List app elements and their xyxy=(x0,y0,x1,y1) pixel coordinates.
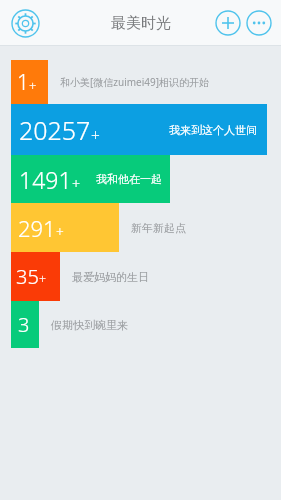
staticText: + xyxy=(39,271,47,288)
staticText: + xyxy=(56,222,64,241)
staticText: 291 xyxy=(18,213,56,243)
staticText: 最爱妈妈的生日 xyxy=(72,270,149,284)
staticText: 和小美[微信zuimei49]相识的开始 xyxy=(60,75,210,89)
staticText: 最美时光 xyxy=(111,14,171,33)
staticText: 假期快到碗里来 xyxy=(51,318,128,332)
staticText: 3 xyxy=(18,311,30,338)
button[interactable]: Settings xyxy=(11,9,40,38)
staticText: 新年新起点 xyxy=(131,221,186,235)
button[interactable]: 20257 xyxy=(0,104,281,155)
button[interactable]: 35 xyxy=(0,252,281,301)
button[interactable]: 291 xyxy=(0,203,281,252)
staticText: 1491 xyxy=(19,164,72,195)
button[interactable]: Add xyxy=(215,10,241,36)
staticText: + xyxy=(91,124,100,145)
staticText: 我和他在一起 xyxy=(96,172,162,186)
staticText: 1 xyxy=(17,68,29,97)
button[interactable]: 3 xyxy=(0,301,281,348)
staticText: 35 xyxy=(16,263,39,290)
button[interactable]: More options xyxy=(246,10,272,36)
staticText: + xyxy=(72,174,81,193)
button[interactable]: 1 xyxy=(0,60,281,104)
staticText: 20257 xyxy=(19,113,91,147)
button[interactable]: 1491 xyxy=(0,155,281,203)
staticText: + xyxy=(29,77,37,95)
staticText: 我来到这个人世间 xyxy=(169,123,257,137)
